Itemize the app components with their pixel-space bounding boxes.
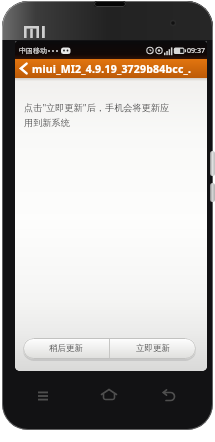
staticText: 中国移动 — [19, 46, 47, 55]
button[interactable]: miui_MI2_4.9.19_3729b84bcc_. — [15, 59, 207, 78]
staticText: 稍后更新 — [49, 343, 83, 354]
staticText: 立即更新 — [136, 343, 170, 354]
button[interactable]: 立即更新 — [110, 338, 196, 359]
button[interactable] — [100, 387, 118, 404]
staticText: 点击"立即更新"后，手机会将更新应 用到新系统 — [24, 101, 170, 129]
button[interactable] — [35, 389, 51, 403]
staticText: 09:37 — [187, 46, 205, 56]
button[interactable] — [159, 389, 177, 404]
button[interactable]: 稍后更新 — [23, 338, 109, 359]
staticText: miui_MI2_4.9.19_3729b84bcc_. — [32, 62, 192, 76]
